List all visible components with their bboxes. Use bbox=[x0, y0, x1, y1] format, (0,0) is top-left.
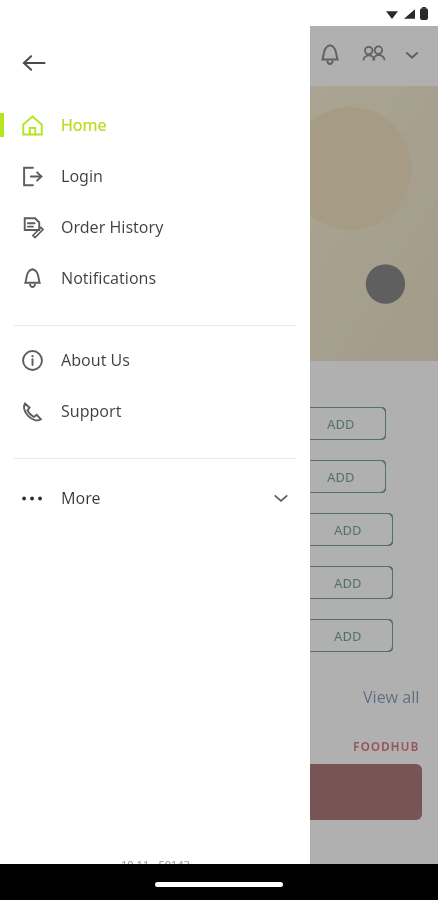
button[interactable]: Notifications bbox=[0, 253, 310, 303]
button[interactable]: Home bbox=[0, 100, 310, 150]
staticText: View all bbox=[363, 686, 420, 708]
staticText: Support bbox=[61, 400, 122, 422]
staticText: About Us bbox=[61, 349, 130, 371]
staticText: Notifications bbox=[61, 267, 157, 289]
staticText: More bbox=[61, 487, 101, 509]
staticText: Home bbox=[61, 114, 107, 136]
button[interactable]: £12.00 bbox=[0, 556, 438, 609]
button[interactable]: Account bbox=[352, 33, 396, 77]
button[interactable]: Notifications bbox=[308, 33, 352, 77]
staticText: Login bbox=[61, 165, 103, 187]
staticText: ADD bbox=[327, 415, 355, 433]
button[interactable]: Support bbox=[0, 386, 310, 436]
staticText: ADD bbox=[334, 574, 362, 592]
button[interactable]: £10.80 bbox=[0, 503, 438, 556]
button[interactable]: Login bbox=[0, 151, 310, 201]
button[interactable]: £7.50 bbox=[0, 397, 438, 450]
button[interactable]: About Us bbox=[0, 335, 310, 385]
staticText: ADD bbox=[334, 521, 362, 539]
button[interactable]: Back bbox=[12, 41, 56, 85]
button[interactable]: Expand bbox=[396, 39, 428, 71]
staticText: ADD bbox=[327, 468, 355, 486]
staticText: ADD bbox=[334, 627, 362, 645]
button[interactable]: £13.40 bbox=[0, 609, 438, 662]
staticText: FOODHUB bbox=[353, 738, 420, 754]
button[interactable]: Order History bbox=[0, 202, 310, 252]
staticText: 10.11 - 50143 bbox=[121, 857, 190, 872]
button[interactable]: £9.00 bbox=[0, 450, 438, 503]
button[interactable]: More bbox=[0, 473, 310, 523]
staticText: Order History bbox=[61, 216, 164, 238]
